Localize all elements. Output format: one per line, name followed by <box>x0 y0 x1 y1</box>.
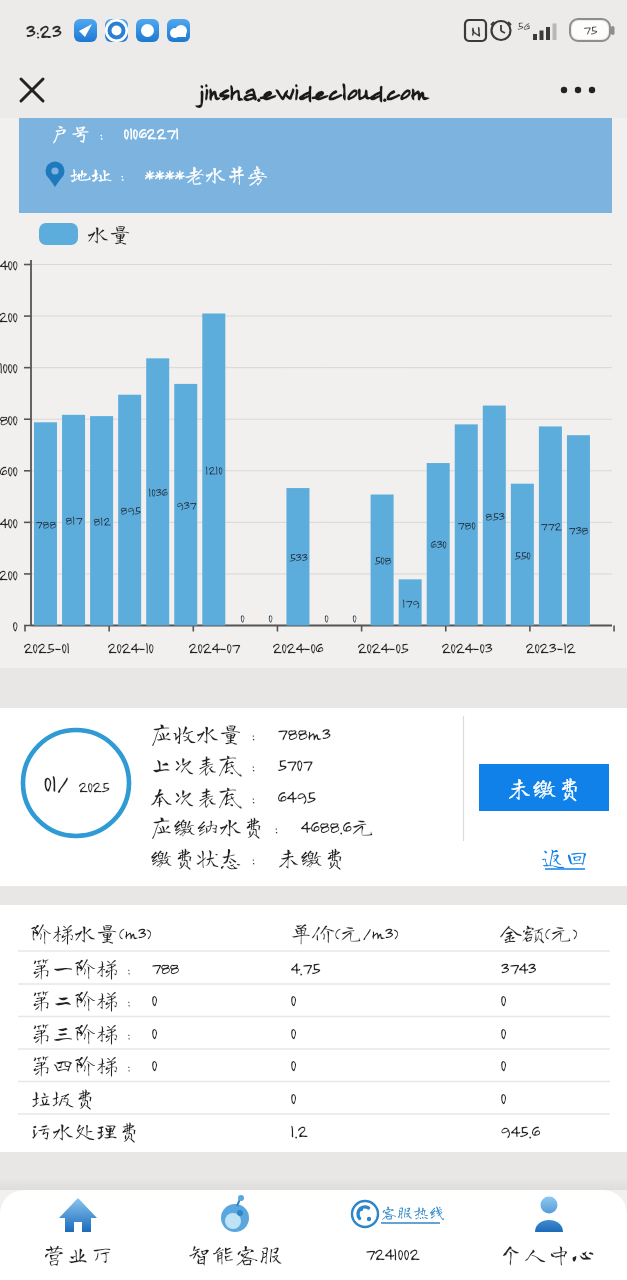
button[interactable] <box>160 1192 310 1280</box>
button[interactable] <box>535 840 595 876</box>
button[interactable] <box>8 66 56 114</box>
button[interactable] <box>474 1192 624 1280</box>
button[interactable] <box>552 66 608 114</box>
button[interactable] <box>317 1192 467 1280</box>
button[interactable] <box>479 764 609 811</box>
button[interactable] <box>3 1192 153 1280</box>
